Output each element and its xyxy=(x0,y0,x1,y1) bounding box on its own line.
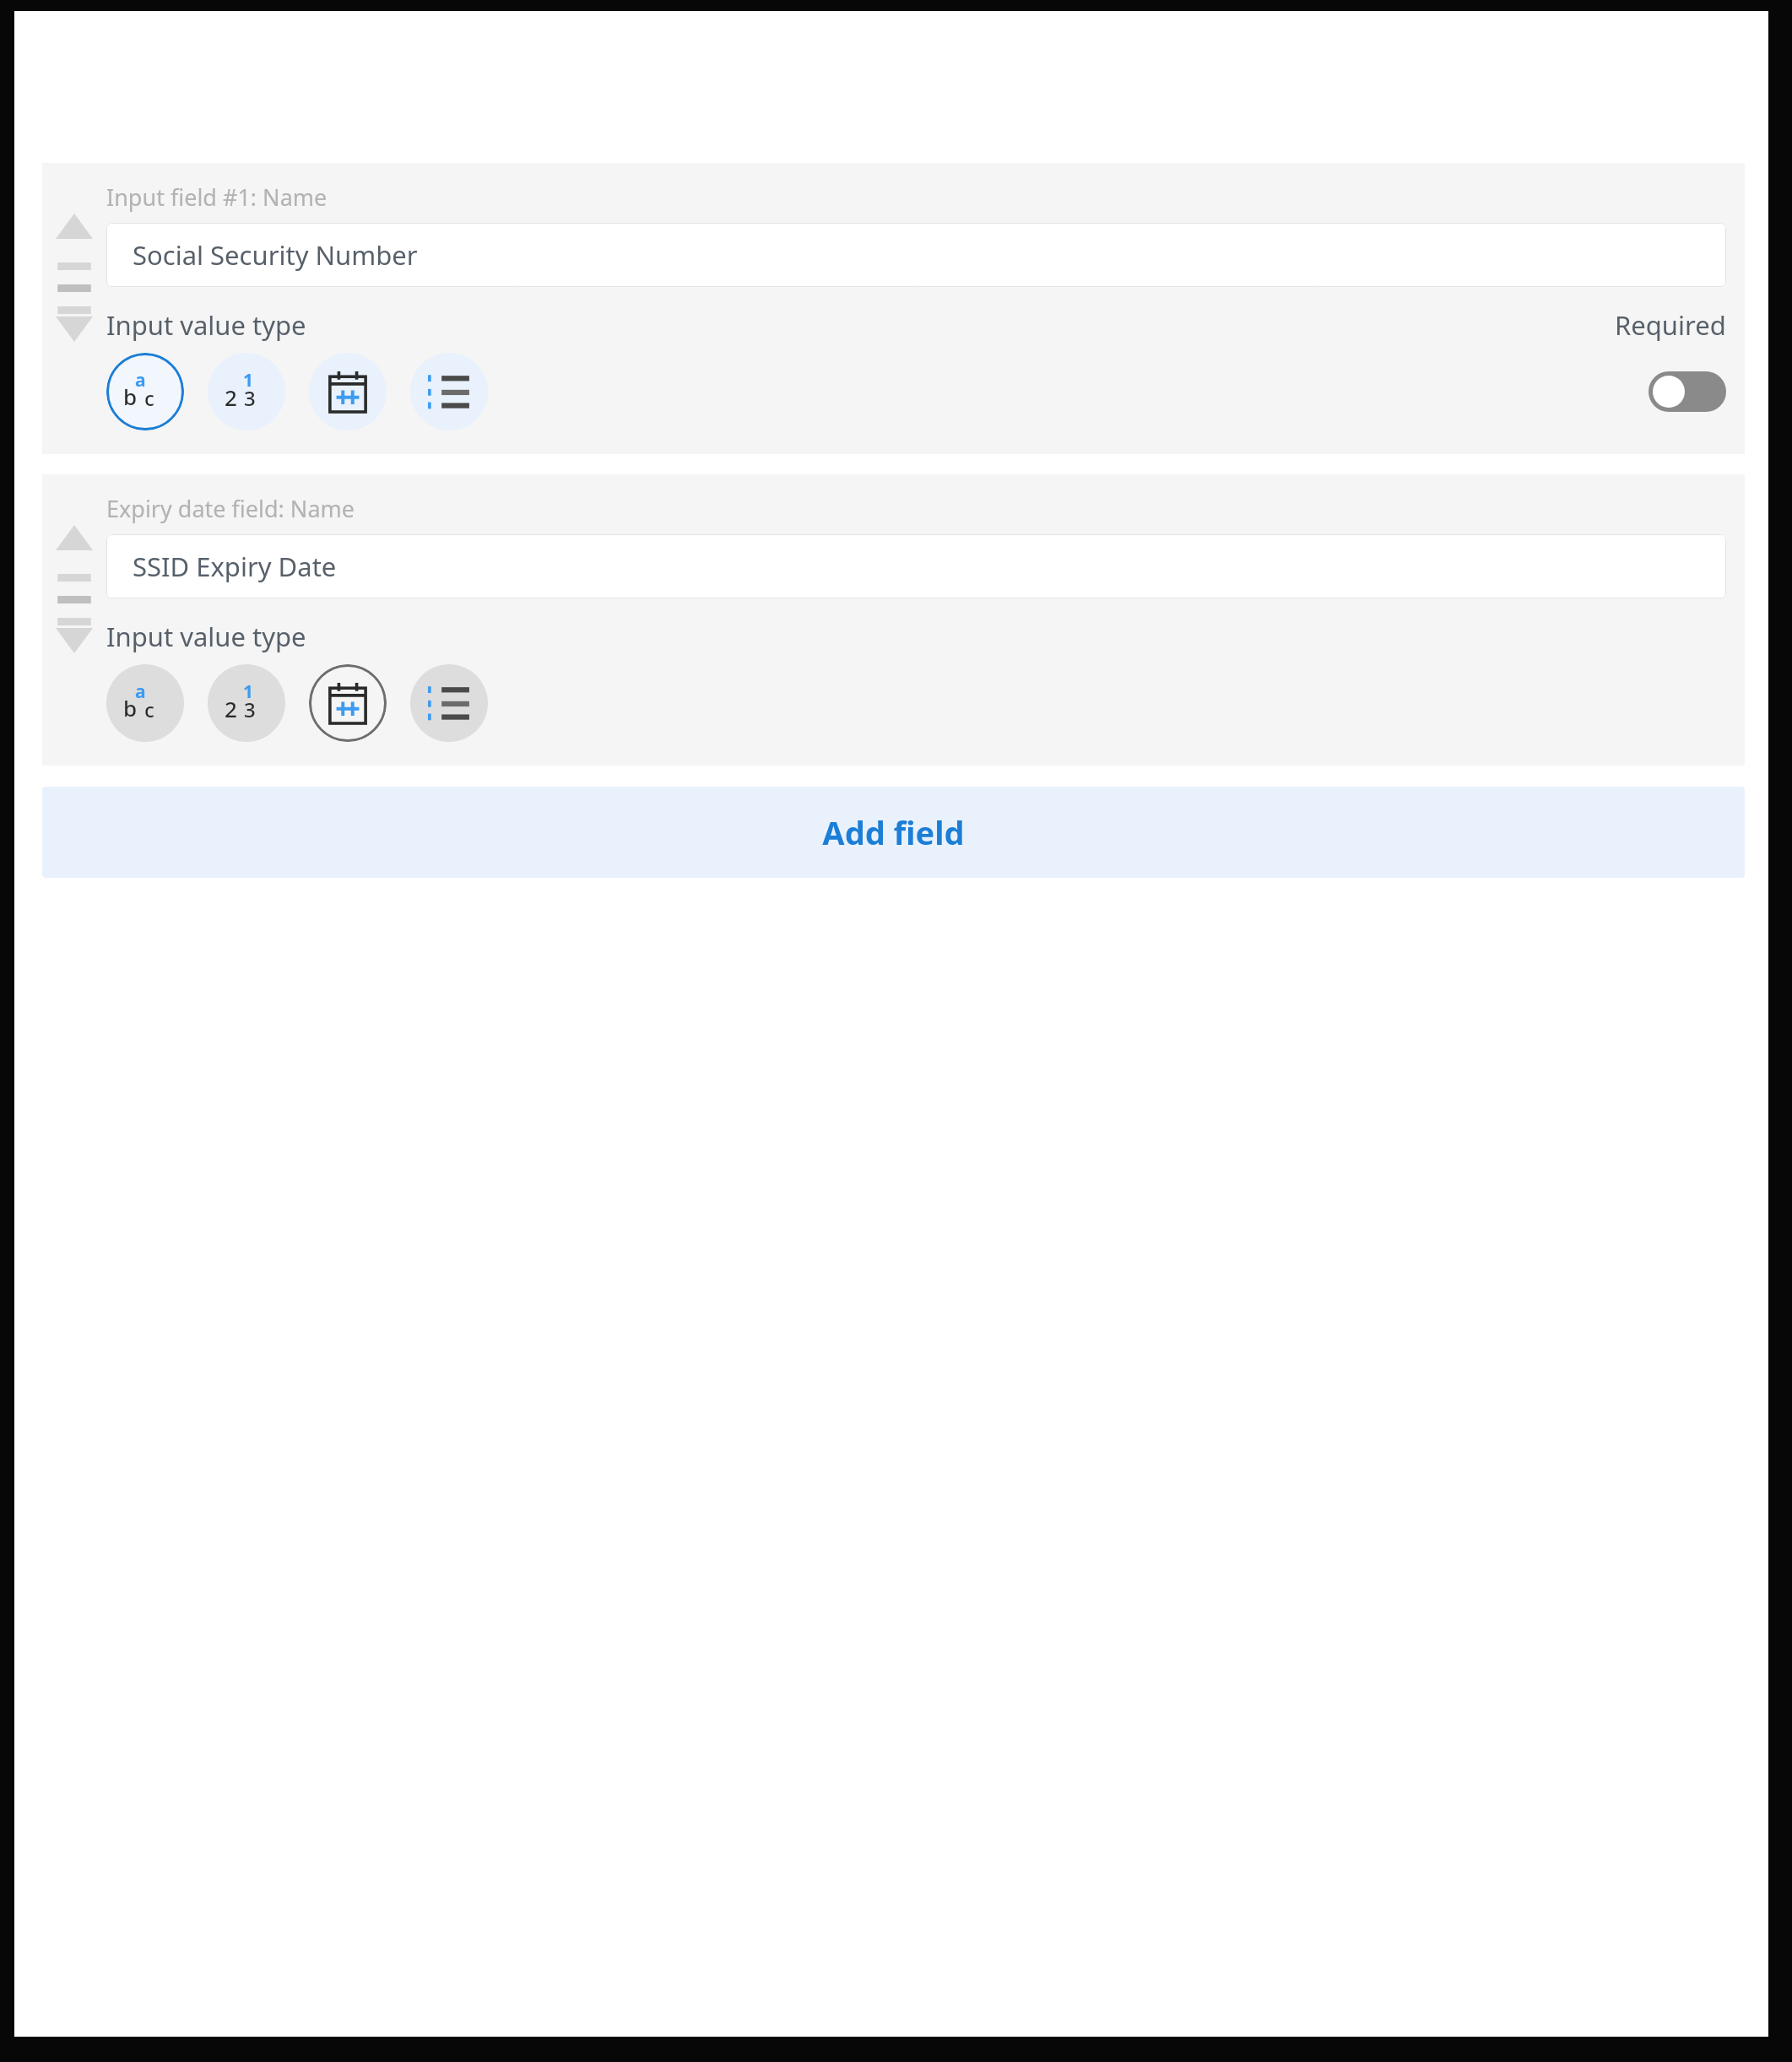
button[interactable]: List input type xyxy=(410,664,488,742)
staticText: 1 xyxy=(243,368,254,392)
staticText: Input value type xyxy=(106,619,306,654)
staticText: Input value type xyxy=(106,307,306,343)
staticText: Social Security Number xyxy=(133,237,418,273)
staticText: c xyxy=(144,384,154,412)
staticText: b xyxy=(123,382,138,411)
button[interactable]: Required toggle xyxy=(1649,371,1726,412)
button[interactable]: Reorder field xyxy=(42,163,106,392)
staticText: 2 xyxy=(225,382,237,412)
staticText: 1 xyxy=(243,679,254,704)
button[interactable]: Text input type xyxy=(106,664,184,742)
staticText: a xyxy=(135,679,146,704)
staticText: SSID Expiry Date xyxy=(133,549,337,584)
staticText: c xyxy=(144,695,154,723)
staticText: Input field #1: Name xyxy=(106,181,328,213)
button[interactable]: Number input type xyxy=(208,353,285,430)
staticText: 2 xyxy=(225,694,237,723)
staticText: 3 xyxy=(244,384,256,412)
staticText: Required xyxy=(1615,307,1726,343)
button[interactable]: Reorder field xyxy=(42,474,106,704)
button[interactable]: Text input type xyxy=(106,353,184,430)
button[interactable]: SSID Expiry Date xyxy=(106,534,1726,598)
button[interactable]: Add field xyxy=(42,787,1745,878)
button[interactable]: Date input type xyxy=(309,353,387,430)
button[interactable]: Number input type xyxy=(208,664,285,742)
staticText: a xyxy=(135,368,146,392)
staticText: 3 xyxy=(244,695,256,723)
staticText: Add field xyxy=(822,810,965,854)
button[interactable]: Date input type xyxy=(309,664,387,742)
staticText: b xyxy=(123,693,138,723)
button[interactable]: Social Security Number xyxy=(106,223,1726,287)
staticText: Expiry date field: Name xyxy=(106,493,355,524)
button[interactable]: List input type xyxy=(410,353,488,430)
